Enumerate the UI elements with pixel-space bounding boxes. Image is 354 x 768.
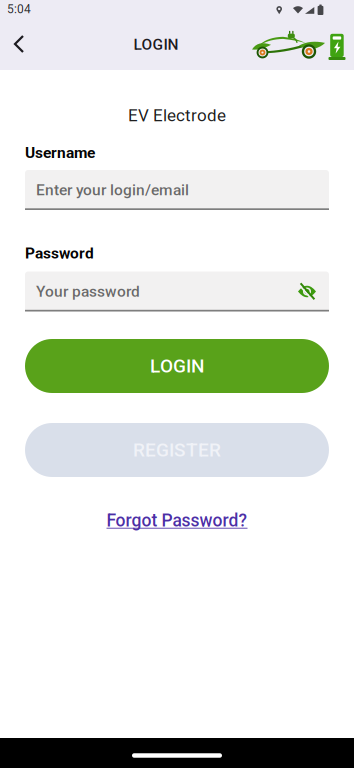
staticText: Password: [25, 244, 94, 262]
button[interactable]: Enter your login/email: [25, 170, 329, 210]
staticText: Your password: [36, 282, 140, 301]
button[interactable]: [297, 282, 329, 300]
staticText: Username: [25, 143, 95, 162]
staticText: LOGIN: [133, 35, 178, 54]
staticText: 5:04: [7, 2, 31, 16]
button[interactable]: [6, 27, 32, 61]
staticText: Enter your login/email: [36, 181, 189, 199]
button[interactable]: LOGIN: [25, 339, 329, 393]
staticText: REGISTER: [133, 439, 221, 461]
button[interactable]: Forgot Password?: [106, 510, 247, 531]
staticText: Forgot Password?: [106, 510, 247, 531]
staticText: EV Electrode: [128, 105, 226, 125]
button[interactable]: REGISTER: [25, 423, 329, 477]
staticText: LOGIN: [150, 355, 204, 377]
button[interactable]: Your password: [25, 271, 329, 311]
